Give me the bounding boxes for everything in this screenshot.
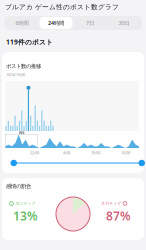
staticText: 10/14 19:00 <box>6 72 25 77</box>
staticText: 4:00 <box>63 150 70 155</box>
staticText: ブルアカ ゲーム性のポスト数グラフ <box>5 3 119 11</box>
button[interactable]: 24時間 <box>39 17 72 29</box>
staticText: 16:00 <box>121 150 130 155</box>
staticText: 7日 <box>86 19 94 27</box>
staticText: 22:00 <box>30 150 39 155</box>
staticText: 感情の割合 <box>6 183 31 190</box>
staticText: 30日 <box>118 19 129 27</box>
staticText: 13% <box>13 208 38 224</box>
staticText: 119件のポスト <box>6 38 53 46</box>
staticText: ネガティブ <box>101 201 121 206</box>
staticText: 24時間 <box>48 19 64 27</box>
staticText: 8件 <box>19 130 25 135</box>
button[interactable]: 30日 <box>107 17 140 29</box>
staticText: ポジティブ <box>15 201 35 206</box>
staticText: 10:00 <box>91 150 100 155</box>
staticText: ポスト数の推移 <box>6 63 41 70</box>
button[interactable]: 7日 <box>73 17 106 29</box>
staticText: 6時間 <box>15 19 28 27</box>
staticText: 87% <box>106 208 131 224</box>
button[interactable]: 6時間 <box>5 17 38 29</box>
